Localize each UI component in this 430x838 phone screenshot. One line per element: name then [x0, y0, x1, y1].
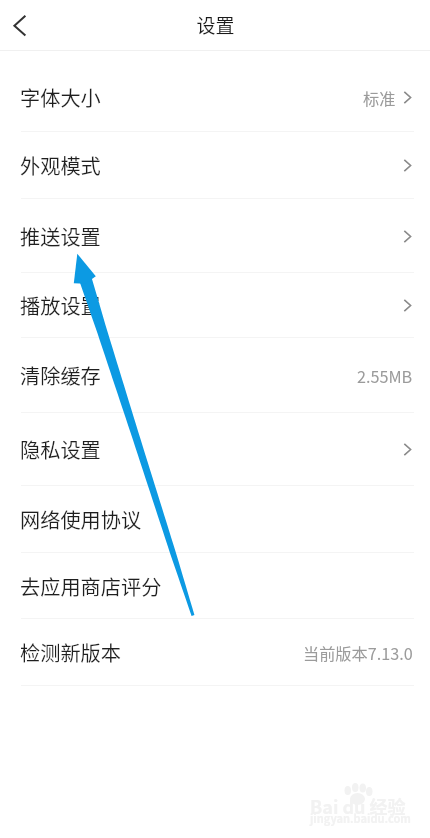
button[interactable]: 推送设置	[0, 199, 430, 273]
button[interactable]: 网络使用协议	[0, 486, 430, 553]
button[interactable]: 检测新版本	[0, 619, 430, 686]
button[interactable]: 外观模式	[0, 132, 430, 199]
staticText: 播放设置	[20, 291, 101, 320]
staticText: 隐私设置	[20, 435, 101, 464]
staticText: jingyan.baidu.com	[310, 810, 411, 826]
staticText: 2.55MB	[357, 364, 413, 387]
button[interactable]: 播放设置	[0, 273, 430, 338]
button[interactable]: 去应用商店评分	[0, 553, 430, 619]
button[interactable]: 字体大小	[0, 62, 430, 132]
staticText: 清除缓存	[20, 361, 101, 390]
staticText: 外观模式	[20, 151, 101, 180]
staticText: Bai du 经验	[310, 793, 406, 819]
staticText: 检测新版本	[20, 638, 121, 667]
staticText: 字体大小	[20, 83, 101, 112]
staticText: 去应用商店评分	[20, 572, 162, 601]
staticText: 设置	[196, 11, 235, 39]
button[interactable]: Back	[0, 0, 46, 50]
staticText: 网络使用协议	[20, 505, 142, 534]
staticText: 当前版本7.13.0	[303, 641, 413, 664]
staticText: 推送设置	[20, 222, 101, 251]
button[interactable]: 清除缓存	[0, 338, 430, 413]
staticText: 标准	[363, 86, 396, 109]
button[interactable]: 隐私设置	[0, 413, 430, 486]
